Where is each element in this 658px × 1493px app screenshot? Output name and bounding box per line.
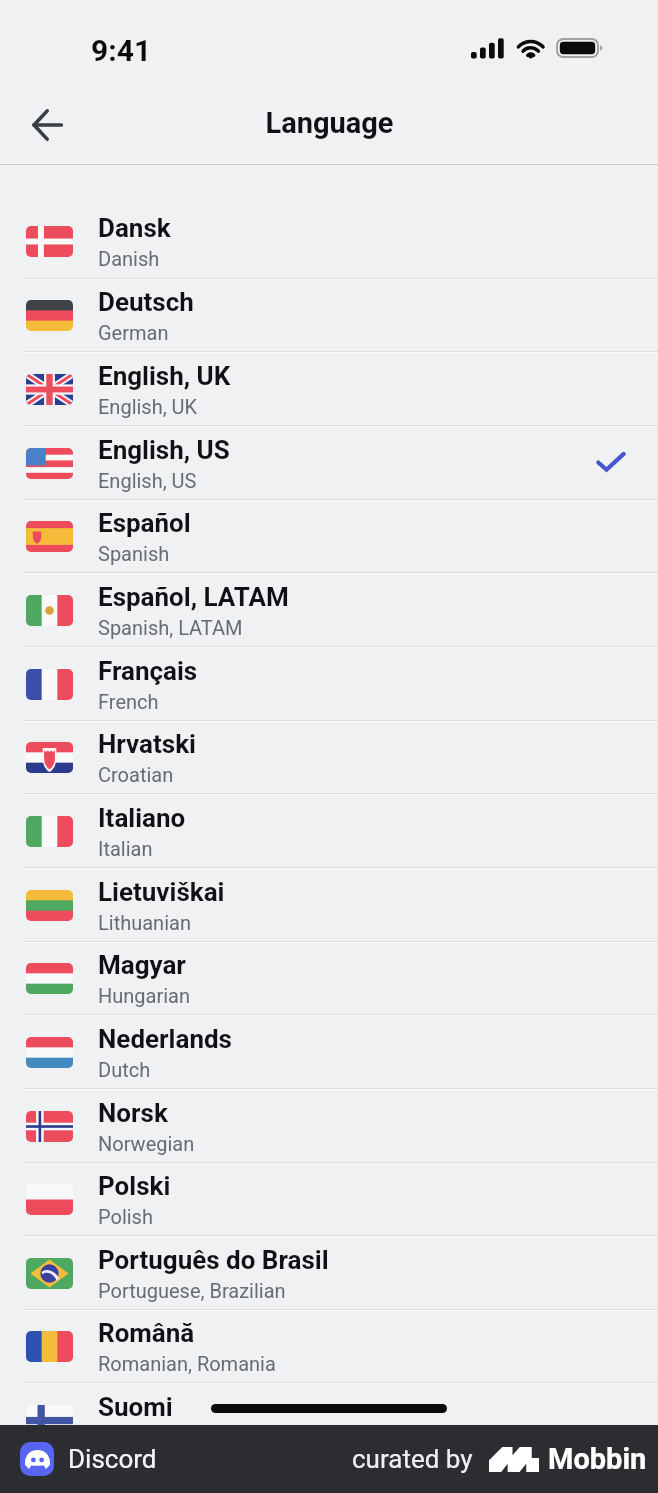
staticText: 9:41 [91,33,152,68]
button[interactable]: Español, LATAM [0,574,658,646]
button[interactable]: Português do Brasil [0,1237,658,1309]
staticText: Română [98,1318,195,1348]
staticText: English, US [98,435,230,465]
button[interactable]: Deutsch [0,280,658,351]
button[interactable]: Magyar [0,943,658,1014]
staticText: Deutsch [98,287,194,317]
staticText: Magyar [98,950,186,980]
button[interactable]: Română [0,1311,658,1382]
staticText: Spanish [98,542,170,565]
button[interactable]: Italiano [0,795,658,867]
staticText: Suomi [98,1392,173,1422]
staticText: Lietuviškai [98,877,225,907]
staticText: German [98,321,169,344]
button[interactable]: English, US [0,427,658,499]
button[interactable]: Lietuviškai [0,869,658,941]
button[interactable]: Back [14,92,80,158]
staticText: English, UK [98,395,198,418]
staticText: Nederlands [98,1024,232,1054]
staticText: Norwegian [98,1132,195,1155]
staticText: Danish [98,247,160,270]
staticText: Hungarian [98,984,191,1007]
staticText: Italiano [98,803,186,833]
button[interactable]: Norsk [0,1090,658,1162]
staticText: Polish [98,1205,153,1228]
staticText: Dutch [98,1058,151,1081]
staticText: English, US [98,469,197,492]
button[interactable]: Français [0,648,658,720]
staticText: Hrvatski [98,729,196,759]
staticText: Mobbin [548,1442,647,1476]
staticText: Français [98,656,198,686]
staticText: French [98,690,159,713]
staticText: Norsk [98,1098,168,1128]
button[interactable]: Español [0,501,658,572]
button[interactable]: Suomi [0,1384,658,1456]
staticText: Português do Brasil [98,1245,329,1275]
staticText: Polski [98,1171,171,1201]
staticText: English, UK [98,361,231,391]
button[interactable]: Nederlands [0,1016,658,1088]
staticText: Lithuanian [98,911,191,934]
button[interactable]: Dansk [0,205,658,278]
staticText: Romanian, Romania [98,1352,276,1375]
button[interactable]: Hrvatski [0,722,658,793]
staticText: Español, LATAM [98,582,289,612]
staticText: Discord [68,1444,157,1474]
staticText: Spanish, LATAM [98,616,243,639]
staticText: Italian [98,837,153,860]
staticText: Language [265,106,394,140]
button[interactable]: Polski [0,1164,658,1235]
staticText: Portuguese, Brazilian [98,1279,286,1302]
button[interactable]: English, UK [0,353,658,425]
staticText: Croatian [98,763,174,786]
staticText: Español [98,508,191,538]
staticText: Dansk [98,213,171,243]
staticText: curated by [352,1444,473,1474]
